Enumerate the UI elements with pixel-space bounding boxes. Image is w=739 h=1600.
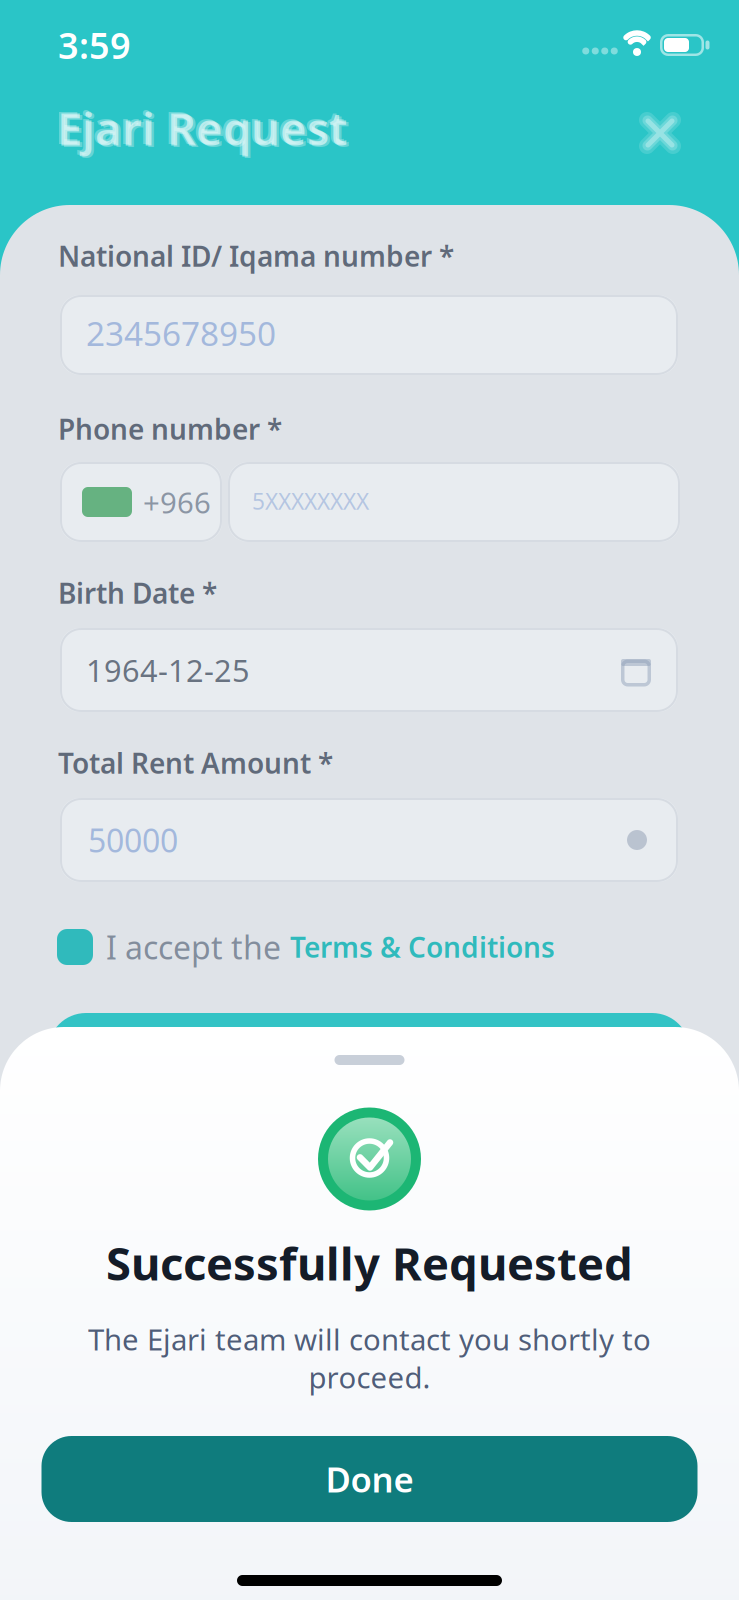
staticText: I accept the — [106, 926, 281, 968]
button[interactable]: Terms & Conditions — [290, 928, 555, 966]
staticText: proceed. — [308, 1357, 430, 1396]
staticText: Ejari Request — [57, 98, 347, 158]
staticText: Birth Date * — [58, 574, 217, 612]
staticText: 1964-12-25 — [86, 650, 250, 690]
staticText: 50000 — [88, 819, 178, 861]
staticText: Phone number * — [58, 410, 282, 448]
staticText: National ID/ Iqama number * — [58, 237, 454, 275]
staticText: Terms & Conditions — [290, 928, 555, 966]
staticText: +966 — [143, 482, 211, 521]
button[interactable]: Close — [633, 106, 687, 160]
staticText: Ejari Request — [54, 96, 344, 157]
staticText: Ejari Request — [59, 99, 349, 160]
button[interactable]: Accept terms — [57, 929, 93, 965]
staticText: The Ejari team will contact you shortly … — [88, 1319, 651, 1358]
staticText: 2345678950 — [86, 311, 276, 355]
staticText: Done — [325, 1456, 413, 1502]
button[interactable]: Done — [41, 1436, 697, 1522]
staticText: 5XXXXXXXX — [252, 486, 369, 516]
staticText: 3:59 — [58, 21, 131, 69]
staticText: Total Rent Amount * — [58, 744, 333, 782]
staticText: Successfully Requested — [106, 1233, 633, 1293]
